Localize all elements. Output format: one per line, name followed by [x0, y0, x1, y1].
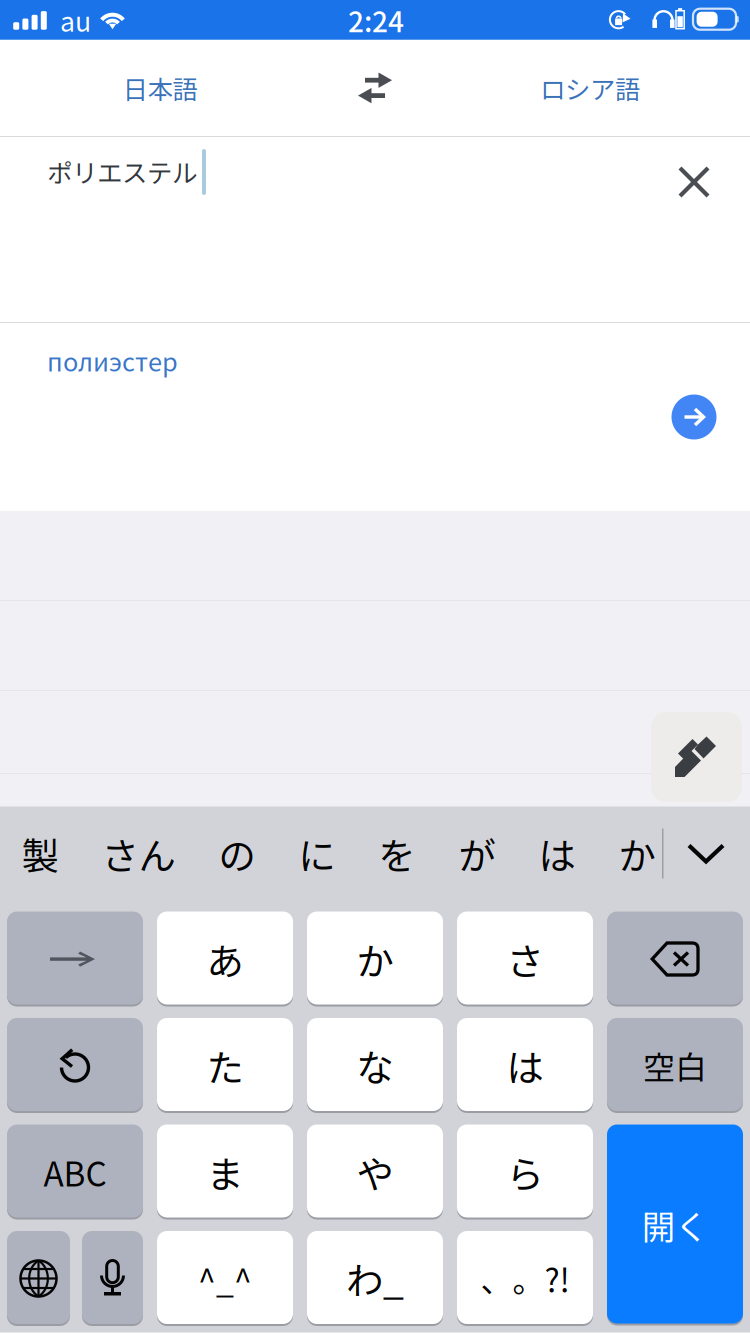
staticText: 開く	[642, 1201, 708, 1249]
button[interactable]: に	[277, 806, 357, 900]
staticText: わ_	[346, 1251, 404, 1306]
staticText: ま	[206, 1145, 243, 1199]
staticText: ロシア語	[540, 70, 640, 106]
staticText: か	[356, 932, 393, 986]
staticText: ポリエステル	[47, 153, 197, 190]
button[interactable]: Translate	[666, 389, 722, 445]
button[interactable]: Next candidate	[7, 912, 143, 1005]
button[interactable]: ロシア語	[430, 40, 750, 136]
button[interactable]: 製	[0, 806, 80, 900]
staticText: ABC	[43, 1148, 106, 1196]
button[interactable]: や	[307, 1125, 443, 1218]
button[interactable]: わ_	[307, 1232, 443, 1325]
button[interactable]: ら	[457, 1125, 593, 1218]
button[interactable]: さ	[457, 912, 593, 1005]
button[interactable]: ^_^	[157, 1232, 293, 1325]
button[interactable]: あ	[157, 912, 293, 1005]
button[interactable]: Switch keyboard	[7, 1232, 70, 1325]
staticText: な	[356, 1038, 393, 1093]
staticText: 、。?!	[480, 1255, 569, 1302]
button[interactable]: か	[307, 912, 443, 1005]
button[interactable]: ABC	[7, 1125, 143, 1218]
staticText: に	[298, 826, 335, 881]
button[interactable]: Delete	[607, 912, 743, 1005]
staticText: ^_^	[198, 1255, 252, 1302]
button[interactable]: 空白	[607, 1019, 743, 1112]
staticText: は	[538, 826, 575, 881]
button[interactable]: か	[597, 806, 677, 900]
button[interactable]: Undo	[7, 1019, 143, 1112]
staticText: は	[506, 1038, 543, 1093]
button[interactable]: 日本語	[0, 40, 320, 136]
button[interactable]: は	[457, 1019, 593, 1112]
staticText: や	[356, 1145, 393, 1199]
button[interactable]: 、。?!	[457, 1232, 593, 1325]
staticText: た	[206, 1038, 243, 1093]
staticText: 製	[21, 826, 58, 881]
button[interactable]: Clear text	[665, 155, 723, 209]
staticText: 日本語	[122, 70, 197, 106]
button[interactable]: ま	[157, 1125, 293, 1218]
staticText: полиэстер	[47, 342, 178, 379]
button[interactable]: が	[437, 806, 517, 900]
button[interactable]: さん	[80, 806, 197, 900]
button[interactable]: Hide candidates	[664, 806, 748, 900]
staticText: さ	[506, 932, 543, 986]
staticText: さん	[101, 826, 175, 881]
staticText: ら	[506, 1145, 543, 1199]
staticText: の	[218, 826, 255, 881]
staticText: が	[458, 826, 495, 881]
staticText: au	[60, 1, 91, 39]
button[interactable]: Dictation	[82, 1232, 143, 1325]
button[interactable]: 開く	[607, 1125, 743, 1324]
staticText: あ	[206, 932, 243, 986]
button[interactable]: Swap languages	[320, 40, 430, 136]
button[interactable]: Handwriting input	[651, 712, 742, 802]
staticText: を	[378, 826, 415, 881]
button[interactable]: は	[517, 806, 597, 900]
button[interactable]: た	[157, 1019, 293, 1112]
staticText: 空白	[643, 1042, 707, 1089]
button[interactable]: を	[357, 806, 437, 900]
button[interactable]: な	[307, 1019, 443, 1112]
staticText: 2:24	[348, 0, 404, 40]
staticText: か	[618, 826, 655, 881]
button[interactable]: の	[197, 806, 277, 900]
